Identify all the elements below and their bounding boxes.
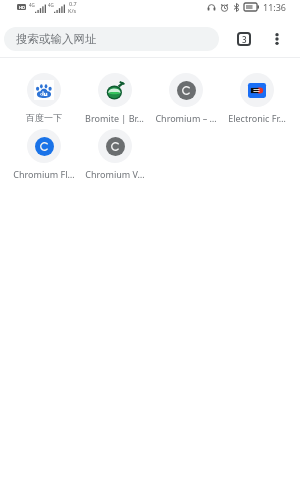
button[interactable]: 百度一下 — [8, 73, 79, 128]
staticText: Electronic Fr… — [228, 112, 286, 124]
button[interactable]: Tabs — [233, 28, 255, 50]
staticText: Chromium Fl… — [13, 168, 75, 180]
staticText: 4G — [29, 2, 35, 8]
button[interactable]: Chromium – … — [150, 73, 221, 129]
staticText: Chromium V… — [85, 168, 145, 180]
button[interactable]: Chromium Fl… — [8, 129, 79, 185]
button[interactable]: More options — [266, 28, 288, 50]
button[interactable]: 搜索或输入网址 — [4, 27, 219, 51]
staticText: 搜索或输入网址 — [16, 32, 97, 46]
staticText: HD — [19, 5, 25, 10]
staticText: 11:36 — [263, 1, 287, 13]
staticText: 4G — [48, 2, 54, 8]
button[interactable]: Chromium V… — [79, 129, 150, 185]
staticText: 百度一下 — [26, 112, 62, 123]
staticText: Bromite | Br… — [85, 112, 144, 124]
staticText: 3 — [242, 34, 247, 45]
staticText: Chromium – … — [155, 112, 217, 124]
button[interactable]: Electronic Fr… — [221, 73, 292, 129]
button[interactable]: Bromite | Br… — [79, 73, 150, 129]
staticText: K/s — [68, 7, 77, 14]
staticText: 0.7 — [69, 0, 77, 7]
